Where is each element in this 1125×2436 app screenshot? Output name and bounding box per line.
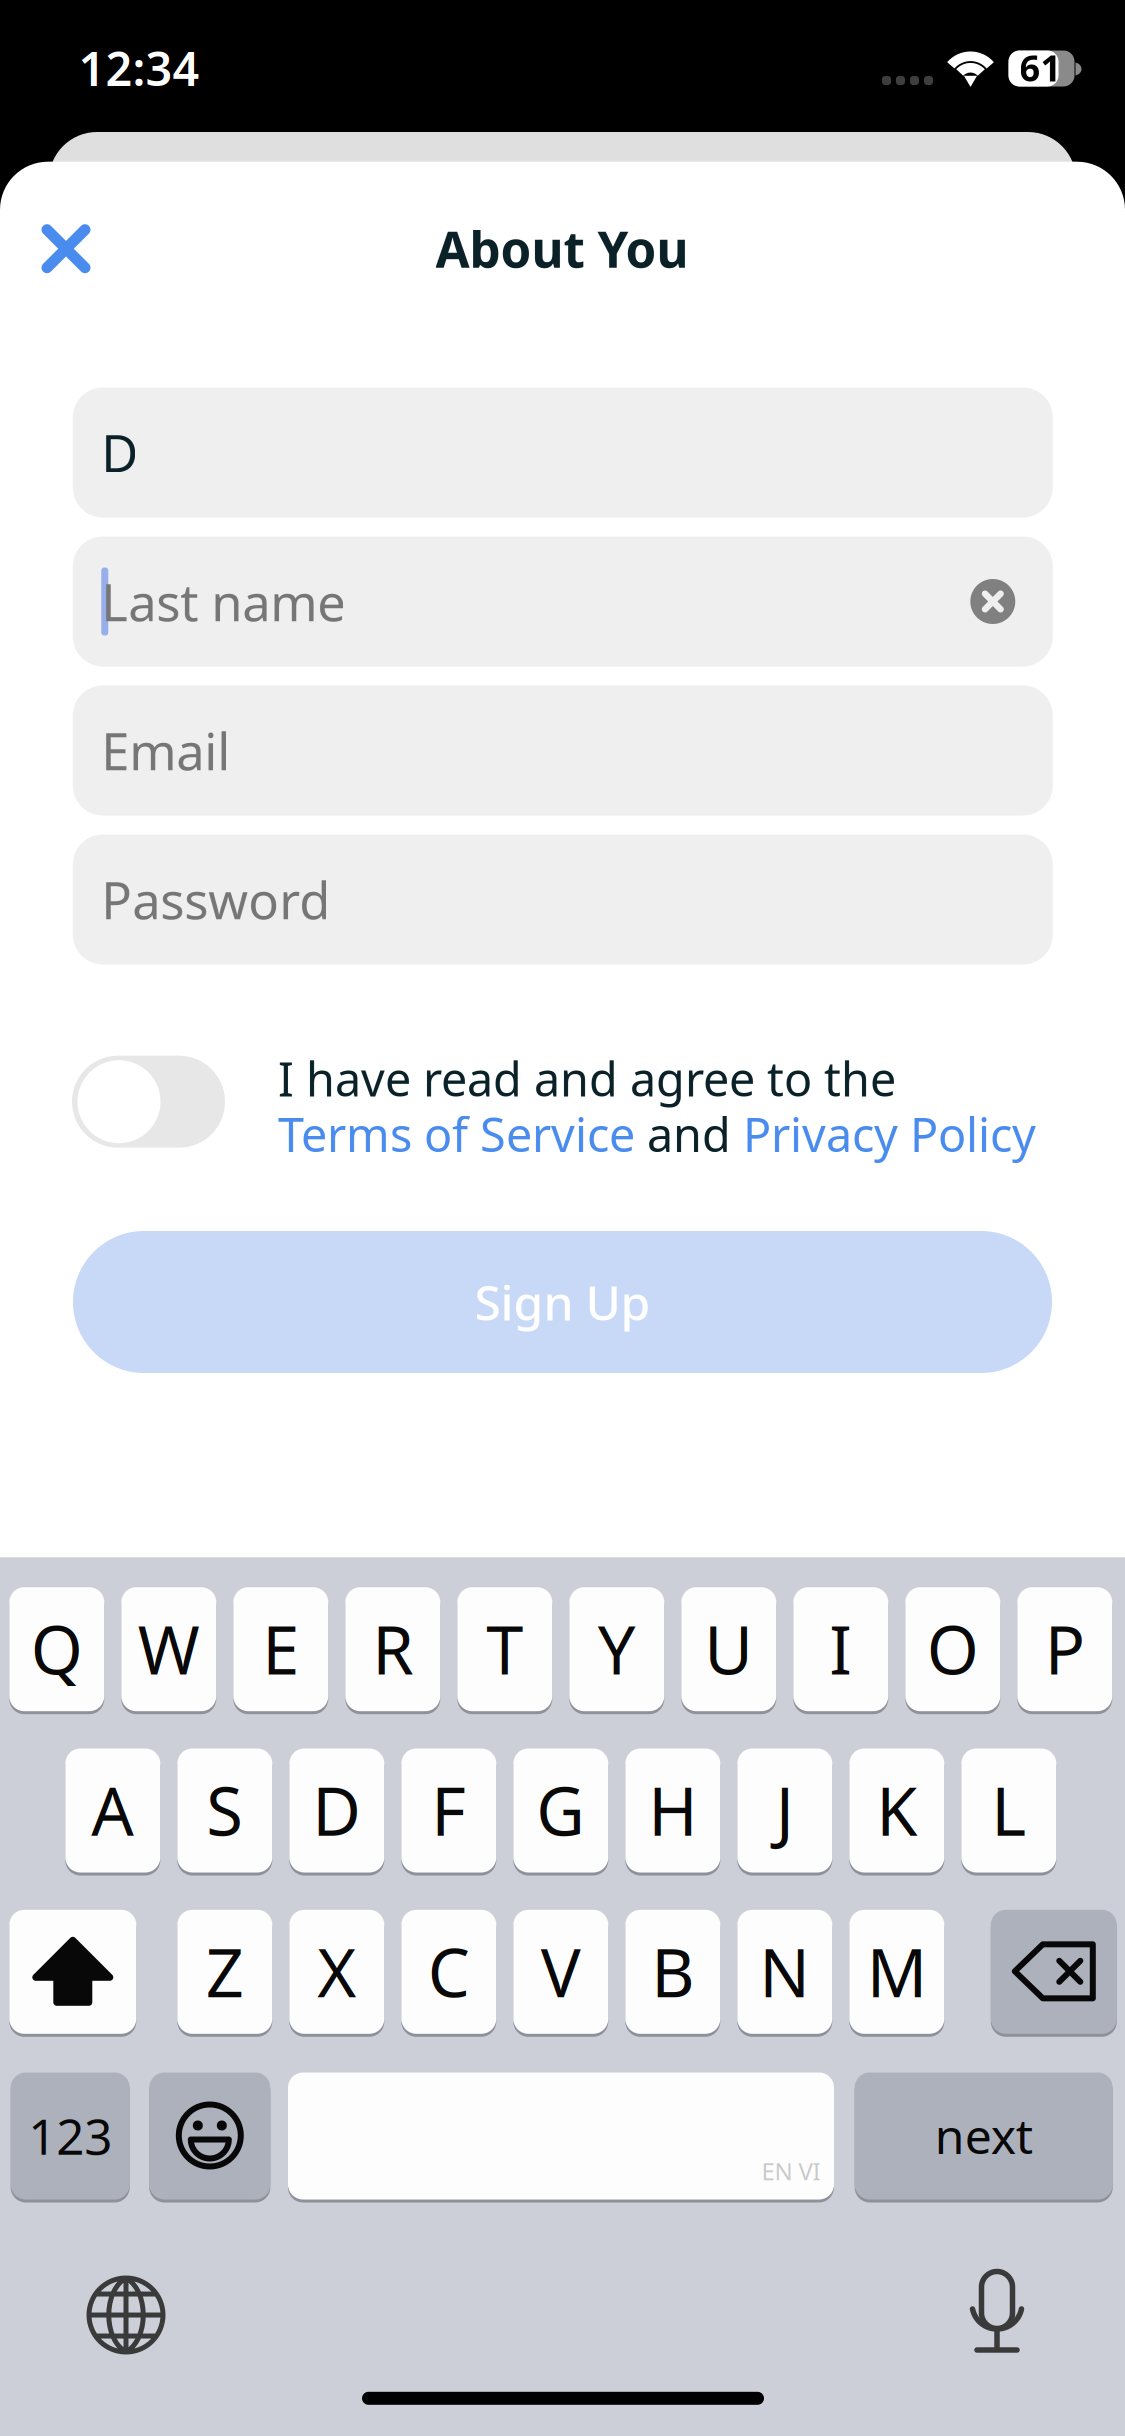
button[interactable]: Close: [18, 201, 114, 297]
staticText: I have read and agree to the: [278, 1047, 896, 1109]
button[interactable]: P: [1017, 1587, 1112, 1716]
staticText: Privacy Policy: [743, 1103, 1036, 1165]
staticText: F: [431, 1766, 466, 1854]
button[interactable]: D: [289, 1748, 384, 1877]
staticText: next: [935, 2104, 1033, 2167]
button[interactable]: Last name: [73, 536, 1053, 666]
button[interactable]: space: [288, 2072, 834, 2204]
staticText: E: [262, 1604, 299, 1693]
button[interactable]: 123: [11, 2072, 130, 2204]
button[interactable]: Shift: [9, 1909, 136, 2038]
button[interactable]: Terms of Service: [278, 1103, 635, 1165]
staticText: K: [876, 1766, 917, 1854]
button[interactable]: V: [513, 1909, 608, 2038]
staticText: T: [486, 1604, 523, 1693]
button[interactable]: M: [849, 1909, 944, 2038]
staticText: H: [648, 1766, 697, 1854]
button[interactable]: H: [625, 1748, 720, 1877]
button[interactable]: Dictate: [968, 2270, 1026, 2356]
staticText: D: [101, 419, 138, 486]
button[interactable]: X: [289, 1909, 384, 2038]
button[interactable]: C: [401, 1909, 496, 2038]
staticText: V: [541, 1927, 581, 2015]
staticText: D: [312, 1766, 361, 1854]
staticText: Password: [101, 866, 330, 933]
button[interactable]: R: [345, 1587, 440, 1716]
button[interactable]: J: [737, 1748, 832, 1877]
button[interactable]: K: [849, 1748, 944, 1877]
staticText: Sign Up: [474, 1270, 650, 1334]
staticText: Email: [101, 717, 230, 784]
staticText: M: [867, 1927, 927, 2015]
button[interactable]: Y: [569, 1587, 664, 1716]
button[interactable]: Privacy Policy: [743, 1103, 1036, 1165]
button[interactable]: Agree to terms and privacy policy: [72, 1056, 225, 1148]
staticText: S: [206, 1766, 243, 1854]
staticText: O: [927, 1604, 979, 1693]
staticText: X: [317, 1927, 356, 2015]
staticText: EN VI: [761, 2155, 820, 2187]
staticText: C: [428, 1927, 470, 2015]
staticText: 61: [1019, 44, 1061, 91]
button[interactable]: Email: [73, 685, 1053, 815]
button[interactable]: Password: [73, 834, 1053, 964]
button[interactable]: Sign Up: [73, 1231, 1052, 1373]
staticText: W: [138, 1604, 200, 1693]
button[interactable]: S: [177, 1748, 272, 1877]
button[interactable]: Q: [9, 1587, 104, 1716]
staticText: Q: [31, 1604, 83, 1693]
button[interactable]: I: [793, 1587, 888, 1716]
staticText: B: [651, 1927, 694, 2015]
button[interactable]: F: [401, 1748, 496, 1877]
button[interactable]: next: [855, 2072, 1113, 2204]
button[interactable]: O: [905, 1587, 1000, 1716]
staticText: I: [829, 1604, 852, 1693]
button[interactable]: T: [457, 1587, 552, 1716]
button[interactable]: W: [121, 1587, 216, 1716]
staticText: 123: [28, 2103, 112, 2168]
staticText: Y: [598, 1604, 636, 1693]
staticText: G: [536, 1766, 585, 1854]
staticText: A: [91, 1766, 134, 1854]
button[interactable]: B: [625, 1909, 720, 2038]
button[interactable]: G: [513, 1748, 608, 1877]
button[interactable]: Emoji: [149, 2072, 270, 2204]
staticText: J: [776, 1766, 794, 1854]
button[interactable]: A: [65, 1748, 160, 1877]
button[interactable]: Delete: [991, 1909, 1117, 2038]
button[interactable]: N: [737, 1909, 832, 2038]
staticText: Last name: [101, 568, 346, 635]
staticText: U: [704, 1604, 753, 1693]
button[interactable]: L: [961, 1748, 1056, 1877]
staticText: P: [1045, 1604, 1085, 1693]
staticText: About You: [435, 216, 688, 281]
button[interactable]: U: [681, 1587, 776, 1716]
staticText: and: [635, 1103, 743, 1165]
button[interactable]: E: [233, 1587, 328, 1716]
button[interactable]: Z: [177, 1909, 272, 2038]
staticText: 12:34: [78, 37, 199, 99]
button[interactable]: Switch keyboard: [86, 2275, 166, 2355]
button[interactable]: D: [73, 387, 1053, 517]
staticText: R: [372, 1604, 413, 1693]
staticText: N: [759, 1927, 810, 2015]
staticText: Terms of Service: [278, 1103, 635, 1165]
staticText: Z: [206, 1927, 244, 2015]
staticText: L: [991, 1766, 1026, 1854]
